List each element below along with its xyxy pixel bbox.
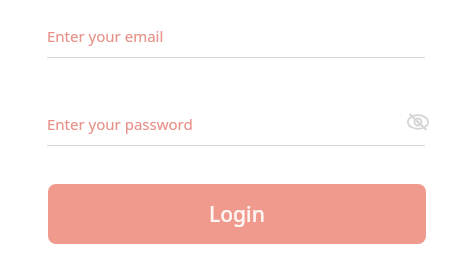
button[interactable]: Enter your email [47,26,425,58]
button[interactable]: Login [48,184,426,244]
button[interactable]: Show password [403,107,432,136]
staticText: Enter your email [47,26,164,46]
staticText: Enter your password [47,114,193,134]
button[interactable]: Enter your password [47,114,425,146]
staticText: Login [209,200,265,229]
